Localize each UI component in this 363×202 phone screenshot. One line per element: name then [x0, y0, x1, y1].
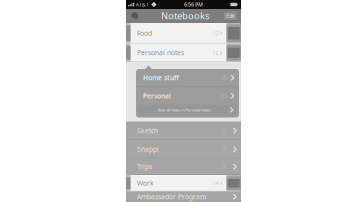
staticText: 14 [213, 180, 219, 187]
staticText: Sketch [137, 126, 158, 135]
staticText: 10 [221, 74, 227, 81]
staticText: Home stuff [143, 73, 179, 82]
staticText: Edit [226, 12, 235, 19]
staticText: Ambassador Program [137, 192, 206, 201]
button[interactable]: Sketch [126, 121, 241, 140]
staticText: Notebooks [161, 9, 209, 22]
staticText: View all notes in Personal notes [158, 107, 211, 112]
staticText: 13 [221, 92, 227, 99]
button[interactable]: Home stuff [136, 69, 239, 86]
button[interactable]: Ambassador Program [126, 191, 241, 202]
button[interactable]: Account [126, 9, 142, 22]
staticText: 7 [222, 146, 225, 153]
staticText: 12 [213, 49, 219, 56]
staticText: 4 [222, 127, 225, 134]
button[interactable]: Personal [136, 87, 239, 105]
staticText: 12 [213, 30, 219, 37]
button[interactable]: View all notes in Personal notes [138, 105, 236, 115]
staticText: Personal [143, 91, 171, 100]
button[interactable]: Snappi [126, 140, 241, 158]
staticText: Food [137, 29, 152, 38]
staticText: Personal notes [137, 48, 184, 57]
button[interactable]: Personal notes [126, 43, 241, 62]
button[interactable]: Edit [223, 11, 241, 20]
button[interactable]: Work [126, 175, 241, 191]
button[interactable]: Food [126, 23, 241, 43]
staticText: Trips [137, 162, 152, 171]
staticText: AT&T [136, 1, 149, 8]
staticText: Snappi [137, 145, 159, 154]
staticText: 3 [222, 163, 225, 170]
staticText: Work [137, 179, 154, 188]
staticText: 6:56 PM [184, 1, 203, 8]
button[interactable]: Trips [126, 158, 241, 175]
